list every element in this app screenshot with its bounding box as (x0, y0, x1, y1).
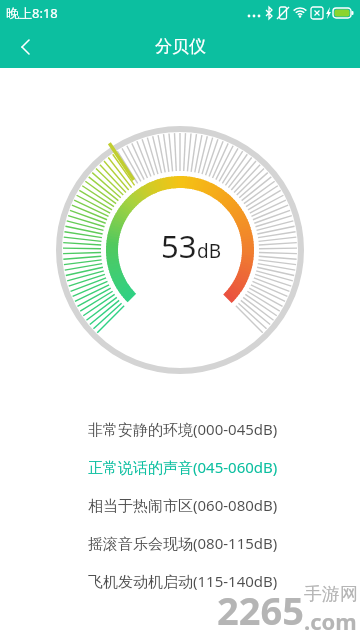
staticText: .com (304, 606, 357, 636)
staticText: 飞机发动机启动(115-140dB) (88, 571, 278, 591)
staticText: 晚上8:18 (6, 4, 58, 22)
button[interactable]: 相当于热闹市区(060-080dB) (3, 486, 360, 524)
staticText: 正常说话的声音(045-060dB) (88, 457, 278, 477)
staticText: 53 (161, 225, 197, 267)
staticText: 相当于热闹市区(060-080dB) (88, 495, 278, 515)
staticText: 分贝仪 (155, 36, 206, 57)
button[interactable]: 飞机发动机启动(115-140dB) (3, 562, 360, 600)
staticText: 非常安静的环境(000-045dB) (88, 419, 278, 439)
button[interactable]: 摇滚音乐会现场(080-115dB) (3, 524, 360, 562)
button[interactable] (10, 31, 42, 63)
staticText: 2265 (217, 584, 304, 636)
staticText: dB (197, 238, 222, 264)
staticText: 摇滚音乐会现场(080-115dB) (88, 533, 278, 553)
staticText: 手游网 (304, 583, 358, 606)
button[interactable]: 非常安静的环境(000-045dB) (3, 410, 360, 448)
button[interactable]: 正常说话的声音(045-060dB) (3, 448, 360, 486)
